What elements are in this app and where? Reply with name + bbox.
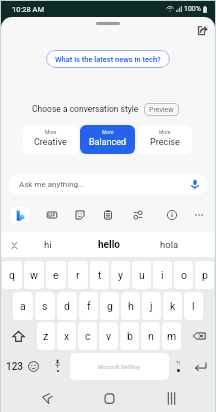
staticText: o	[181, 269, 187, 281]
button[interactable]: Emoji	[25, 353, 42, 380]
button[interactable]: r	[68, 261, 88, 289]
button[interactable]: More	[80, 125, 135, 154]
button[interactable]: More	[23, 125, 78, 154]
button[interactable]: Translate	[129, 206, 147, 224]
button[interactable]: Recent apps	[157, 384, 185, 412]
staticText: x	[64, 330, 70, 342]
button[interactable]: f	[79, 292, 98, 320]
button[interactable]: Voice typing	[49, 353, 66, 380]
button[interactable]: e	[46, 261, 66, 289]
button[interactable]: t	[90, 261, 109, 289]
button[interactable]: Share	[193, 21, 211, 39]
button[interactable]: w	[24, 261, 44, 289]
button[interactable]: What is the latest news in tech?	[46, 50, 170, 68]
staticText: ?!	[176, 360, 181, 366]
button[interactable]: j	[142, 292, 161, 320]
button[interactable]: hi	[18, 232, 78, 257]
button[interactable]: d	[57, 292, 77, 320]
staticText: l	[192, 300, 195, 312]
button[interactable]: More options	[190, 206, 208, 224]
staticText: n	[148, 330, 154, 342]
staticText: 100%	[184, 5, 201, 13]
button[interactable]: y	[111, 261, 130, 289]
button[interactable]: p	[195, 261, 214, 289]
button[interactable]: z	[37, 322, 55, 350]
staticText: y	[118, 269, 123, 281]
staticText: u	[139, 269, 145, 281]
staticText: hello	[98, 239, 120, 251]
staticText: a	[20, 300, 26, 312]
button[interactable]: c	[78, 322, 97, 350]
button[interactable]: i	[153, 261, 172, 289]
staticText: Microsoft SwiftKey	[98, 364, 141, 370]
button[interactable]: a	[13, 292, 33, 320]
staticText: p	[202, 269, 208, 281]
staticText: What is the latest news in tech?	[55, 55, 161, 64]
button[interactable]: Info	[163, 206, 181, 224]
staticText: b	[127, 330, 133, 342]
staticText: m	[167, 330, 177, 342]
staticText: z	[43, 330, 49, 342]
button[interactable]: n	[141, 322, 160, 350]
button[interactable]: x	[57, 322, 76, 350]
staticText: Creative	[34, 137, 67, 148]
button[interactable]: Expand suggestions	[7, 238, 21, 252]
staticText: More	[102, 129, 114, 135]
staticText: Preview	[149, 106, 174, 114]
staticText: Precise	[150, 137, 180, 148]
button[interactable]: l	[184, 292, 203, 320]
button[interactable]: Voice search	[187, 177, 202, 192]
staticText: More	[45, 129, 57, 135]
staticText: d	[64, 300, 70, 312]
button[interactable]: Enter	[189, 353, 211, 380]
staticText: t	[98, 269, 102, 281]
button[interactable]: v	[99, 322, 118, 350]
staticText: v	[106, 330, 112, 342]
staticText: s	[42, 300, 48, 312]
staticText: j	[150, 300, 153, 312]
button[interactable]: o	[174, 261, 193, 289]
staticText: q	[9, 269, 15, 281]
staticText: h	[128, 300, 134, 312]
staticText: k	[170, 300, 176, 312]
button[interactable]: GIF	[43, 206, 61, 224]
button[interactable]: hello	[78, 232, 139, 257]
button[interactable]: hola	[139, 232, 200, 257]
staticText: Ask me anything...	[19, 180, 85, 189]
button[interactable]: k	[163, 292, 182, 320]
staticText: 123	[6, 361, 24, 373]
button[interactable]: m	[162, 322, 181, 350]
button[interactable]: q	[2, 261, 22, 289]
staticText: i	[161, 269, 164, 281]
button[interactable]: g	[100, 292, 119, 320]
button[interactable]: u	[132, 261, 151, 289]
button[interactable]: Home	[95, 384, 123, 412]
staticText: w	[30, 269, 38, 281]
button[interactable]: s	[35, 292, 55, 320]
button[interactable]: More	[137, 125, 192, 154]
button[interactable]: Ask me anything...	[9, 174, 207, 195]
button[interactable]: b	[120, 322, 139, 350]
button[interactable]: Backspace	[182, 322, 215, 350]
staticText: More	[159, 129, 171, 135]
staticText: e	[53, 269, 59, 281]
button[interactable]: Symbols	[170, 353, 186, 380]
button[interactable]: Bing	[11, 207, 29, 223]
staticText: Choose a conversation style	[32, 104, 139, 114]
staticText: Balanced	[89, 137, 127, 148]
staticText: 10:28 AM	[12, 5, 44, 14]
button[interactable]: Microsoft SwiftKey	[70, 353, 169, 380]
button[interactable]: Stickers	[71, 206, 89, 224]
staticText: g	[107, 300, 113, 312]
staticText: r	[76, 269, 80, 281]
button[interactable]: Numbers	[2, 353, 28, 380]
button[interactable]: Clipboard	[99, 206, 117, 224]
button[interactable]: h	[121, 292, 140, 320]
staticText: hola	[160, 239, 179, 250]
button[interactable]: Preview	[144, 103, 179, 116]
staticText: hi	[44, 239, 52, 250]
staticText: f	[87, 300, 91, 312]
button[interactable]: Back	[33, 384, 61, 412]
button[interactable]: Shift	[1, 322, 36, 350]
staticText: c	[85, 330, 91, 342]
